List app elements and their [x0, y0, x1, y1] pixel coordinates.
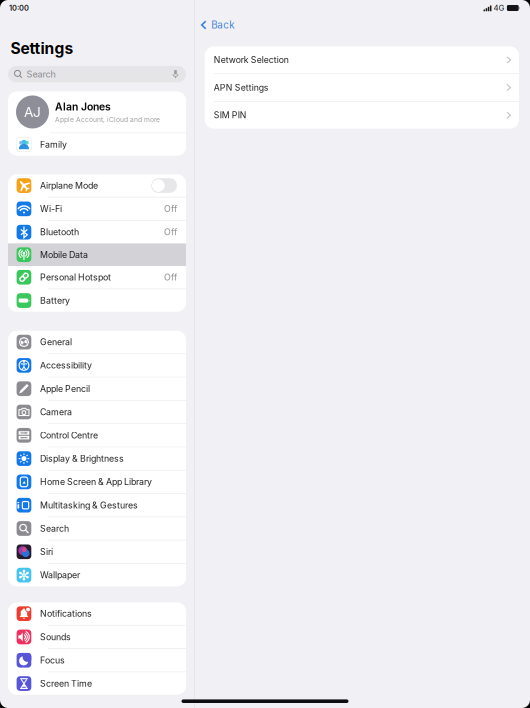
- staticText: 4G: [493, 3, 504, 13]
- staticText: General: [40, 337, 72, 347]
- button[interactable]: Airplane Mode: [8, 174, 186, 197]
- staticText: Control Centre: [40, 430, 98, 441]
- staticText: Wi-Fi: [40, 203, 62, 214]
- button[interactable]: Search: [8, 517, 186, 540]
- staticText: Notifications: [40, 608, 92, 619]
- staticText: Airplane Mode: [40, 180, 98, 191]
- staticText: Search: [40, 523, 69, 534]
- button[interactable]: Screen Time: [8, 672, 186, 695]
- button[interactable]: Search: [0, 66, 194, 82]
- button[interactable]: SIM PIN: [205, 102, 519, 129]
- staticText: Accessibility: [40, 360, 92, 371]
- staticText: Multitasking & Gestures: [40, 500, 138, 510]
- staticText: APN Settings: [214, 82, 269, 93]
- button[interactable]: Sounds: [8, 626, 186, 648]
- staticText: Personal Hotspot: [40, 272, 111, 282]
- staticText: SIM PIN: [214, 110, 247, 120]
- staticText: Search: [27, 69, 56, 80]
- staticText: Off: [164, 227, 177, 237]
- button[interactable]: Network Selection: [205, 46, 519, 73]
- button[interactable]: Apple Pencil: [8, 377, 186, 400]
- staticText: AJ: [24, 104, 41, 120]
- button[interactable]: Family: [8, 133, 186, 156]
- staticText: 10:00: [9, 3, 29, 12]
- staticText: Bluetooth: [40, 227, 79, 237]
- staticText: Focus: [40, 655, 65, 665]
- button[interactable]: Accessibility: [8, 354, 186, 377]
- button[interactable]: Wallpaper: [8, 564, 186, 586]
- staticText: Back: [211, 19, 234, 31]
- button[interactable]: Siri: [8, 540, 186, 563]
- button[interactable]: APN Settings: [205, 74, 519, 101]
- staticText: Display & Brightness: [40, 453, 124, 464]
- button[interactable]: Personal Hotspot: [8, 266, 186, 289]
- staticText: Mobile Data: [40, 249, 88, 260]
- button[interactable]: Focus: [8, 649, 186, 672]
- button[interactable]: Notifications: [8, 602, 186, 625]
- staticText: Home Screen & App Library: [40, 477, 152, 487]
- staticText: Sounds: [40, 632, 71, 642]
- staticText: Siri: [40, 546, 53, 557]
- button[interactable]: General: [8, 331, 186, 353]
- button[interactable]: Wi-Fi: [8, 198, 186, 220]
- staticText: Apple Pencil: [40, 383, 90, 394]
- button[interactable]: Display & Brightness: [8, 447, 186, 470]
- button[interactable]: Bluetooth: [8, 221, 186, 243]
- button[interactable]: Battery: [8, 289, 186, 312]
- staticText: Family: [40, 139, 67, 150]
- button[interactable]: Multitasking & Gestures: [8, 494, 186, 516]
- button[interactable]: Mobile Data: [8, 243, 186, 266]
- button[interactable]: Home Screen & App Library: [8, 471, 186, 493]
- staticText: Apple Account, iCloud and more: [55, 115, 160, 124]
- staticText: Off: [164, 203, 177, 214]
- staticText: Wallpaper: [40, 570, 80, 580]
- staticText: Settings: [10, 39, 73, 58]
- staticText: Alan Jones: [55, 100, 111, 113]
- button[interactable]: Camera: [8, 401, 186, 423]
- button[interactable]: Control Centre: [8, 424, 186, 447]
- staticText: Screen Time: [40, 678, 92, 689]
- button[interactable]: Back: [197, 15, 238, 35]
- staticText: Battery: [40, 295, 70, 306]
- staticText: Network Selection: [214, 55, 289, 65]
- staticText: Camera: [40, 407, 72, 417]
- button[interactable]: AJ: [8, 91, 186, 132]
- staticText: Off: [164, 272, 177, 282]
